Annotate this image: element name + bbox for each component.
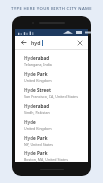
button[interactable]: Hyde [24, 117, 84, 133]
staticText: NY, United States [24, 142, 54, 147]
staticText: Hyde [24, 119, 36, 125]
staticText: hyd [31, 39, 41, 46]
staticText: Hyde Park [24, 71, 48, 77]
staticText: Hyde Street [24, 87, 51, 93]
button[interactable]: Hyde Street [24, 85, 84, 101]
staticText: Boston, MA, United States [24, 157, 68, 162]
staticText: Hyderabad [24, 55, 50, 61]
staticText: Telangana, India [24, 62, 52, 67]
button[interactable]: Hyde Park [24, 69, 84, 85]
staticText: Hyderabad [24, 103, 50, 109]
button[interactable]: Hyde Park [24, 149, 84, 162]
staticText: United Kingdom [24, 126, 52, 131]
staticText: United Kingdom [24, 78, 52, 83]
staticText: Sindh, Pakistan [24, 110, 50, 115]
staticText: TYPE HERE YOUR BIRTH CITY NAME [11, 6, 92, 12]
button[interactable]: Hyderabad [24, 101, 84, 117]
button[interactable]: Clear search [75, 38, 84, 47]
button[interactable]: Back [19, 38, 28, 47]
staticText: Hyde Park [24, 150, 48, 156]
button[interactable]: Hyderabad [24, 53, 84, 69]
staticText: San Francisco, CA, United States [24, 94, 78, 99]
button[interactable]: Hyde Park [24, 133, 84, 149]
staticText: Hyde Park [24, 135, 48, 141]
